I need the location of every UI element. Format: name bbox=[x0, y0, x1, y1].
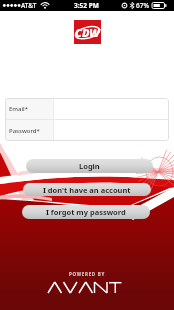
button[interactable]: Email* bbox=[5, 98, 169, 119]
staticText: Login bbox=[79, 161, 100, 171]
staticText: 3:52 PM bbox=[74, 1, 99, 10]
staticText: CDW bbox=[75, 25, 100, 40]
staticText: I forgot my password bbox=[46, 207, 126, 217]
staticText: POWERED BY bbox=[69, 271, 105, 277]
staticText: 67% bbox=[136, 1, 149, 10]
staticText: Password* bbox=[9, 127, 40, 135]
other: CDW logo bbox=[74, 20, 101, 44]
staticText: Email* bbox=[9, 105, 28, 113]
button[interactable]: Login bbox=[26, 159, 153, 173]
button[interactable]: I don't have an account bbox=[23, 183, 151, 196]
button[interactable]: I forgot my password bbox=[22, 205, 150, 219]
staticText: I don't have an account bbox=[43, 185, 131, 195]
button[interactable]: Password* bbox=[5, 120, 169, 141]
staticText: AT&T bbox=[21, 1, 37, 10]
